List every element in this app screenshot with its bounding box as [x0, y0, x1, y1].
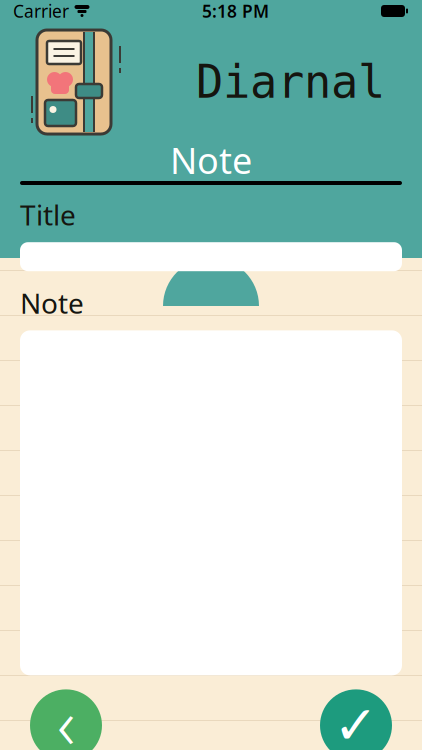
staticText: Title [20, 196, 76, 233]
staticText: Note [170, 136, 252, 184]
staticText: Carrier [13, 0, 69, 22]
staticText: Diarnal [196, 56, 385, 108]
staticText: ✓ [333, 695, 378, 750]
staticText: 5:18 PM [202, 0, 269, 22]
button[interactable]: Save note [320, 689, 392, 750]
button[interactable]: Back [30, 689, 102, 750]
staticText: Note [20, 284, 84, 321]
staticText: ‹ [57, 676, 75, 750]
